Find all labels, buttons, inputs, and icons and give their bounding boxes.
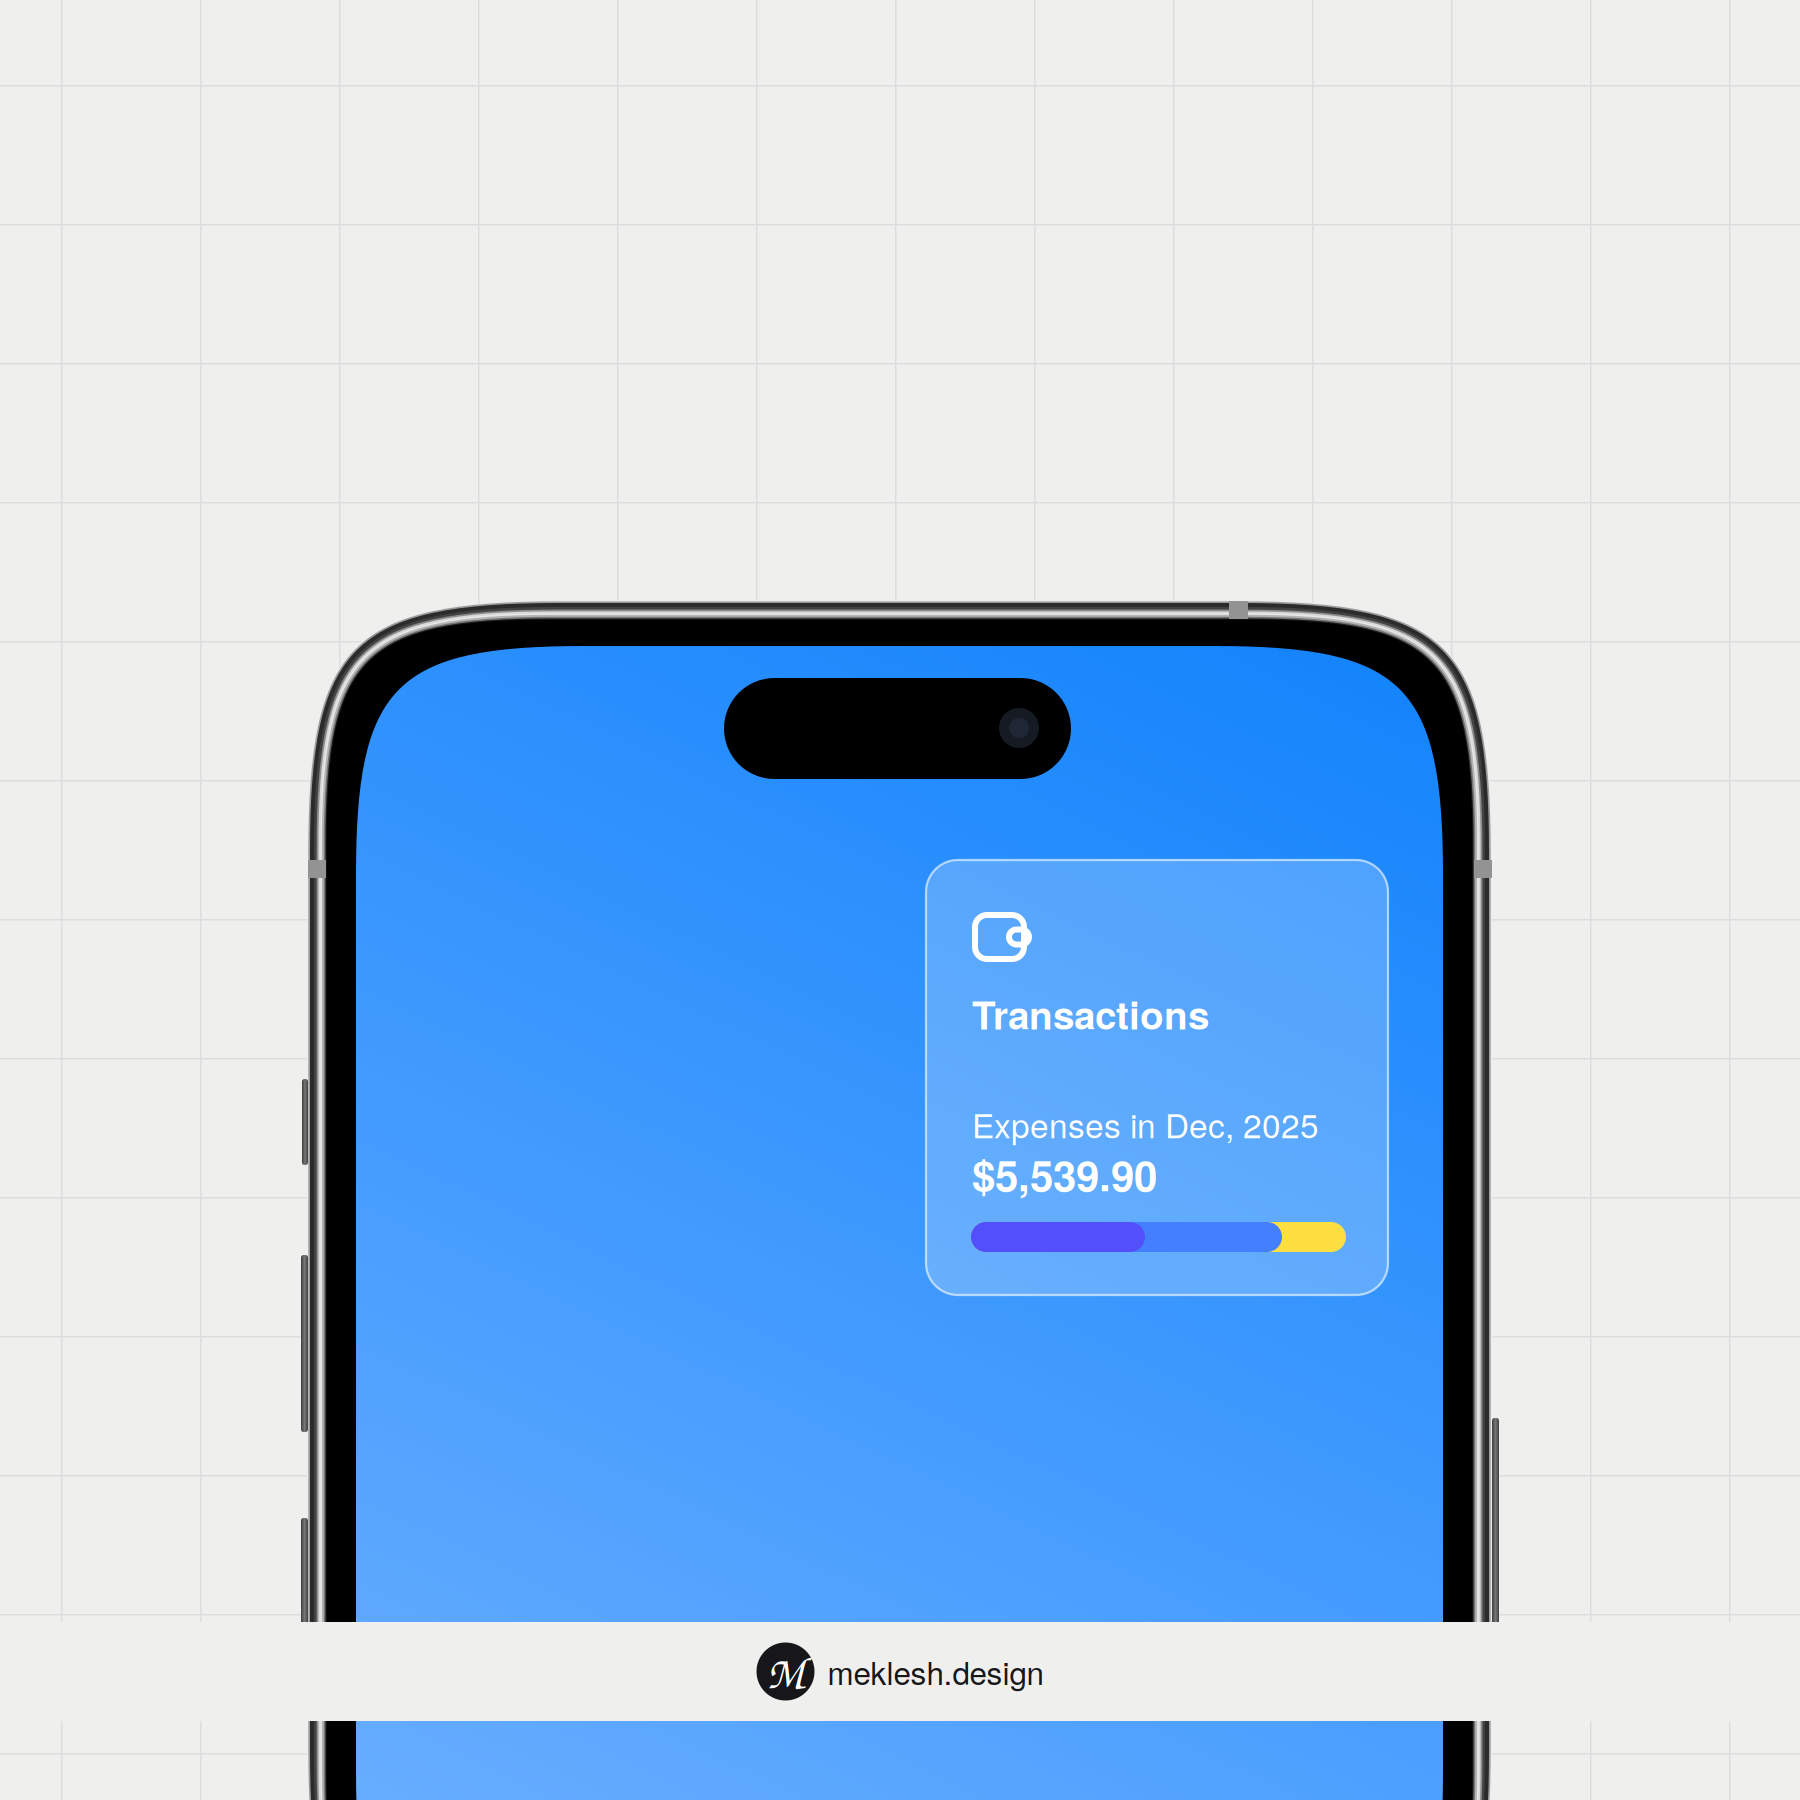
staticText: M [766, 1642, 804, 1701]
staticText: meklesh.design [827, 1649, 1043, 1694]
button[interactable]: M [756, 1642, 1043, 1701]
staticText: Transactions [972, 986, 1209, 1041]
staticText: Expenses in Dec, 2025 [972, 1100, 1319, 1148]
staticText: $5,539.90 [972, 1144, 1157, 1204]
button[interactable]: Transactions widget, expenses in Dec 202… [926, 860, 1388, 1295]
